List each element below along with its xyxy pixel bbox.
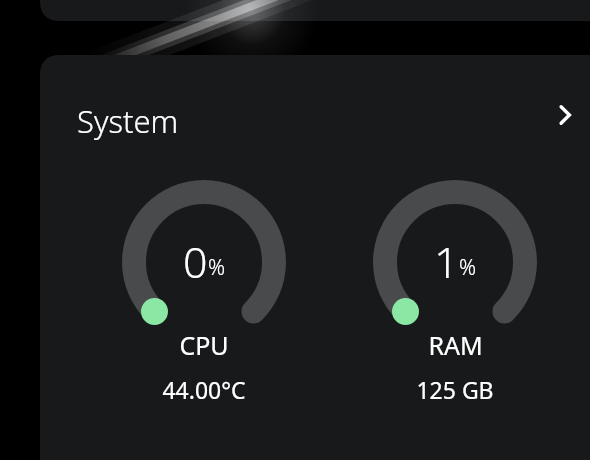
button[interactable]: Open System details bbox=[541, 91, 589, 139]
staticText: 1 bbox=[434, 232, 459, 288]
staticText: % bbox=[459, 253, 477, 282]
staticText: System bbox=[77, 100, 179, 142]
button[interactable]: CPU 0 percent, 44.00°C bbox=[109, 167, 299, 357]
staticText: 125 GB bbox=[416, 374, 494, 405]
staticText: 0 bbox=[183, 232, 208, 288]
staticText: CPU bbox=[179, 328, 229, 362]
staticText: RAM bbox=[428, 328, 483, 362]
button[interactable] bbox=[40, 60, 590, 126]
button[interactable]: RAM 1 percent, 125 GB bbox=[360, 167, 550, 357]
staticText: 44.00°C bbox=[162, 374, 246, 405]
staticText: % bbox=[208, 253, 226, 282]
